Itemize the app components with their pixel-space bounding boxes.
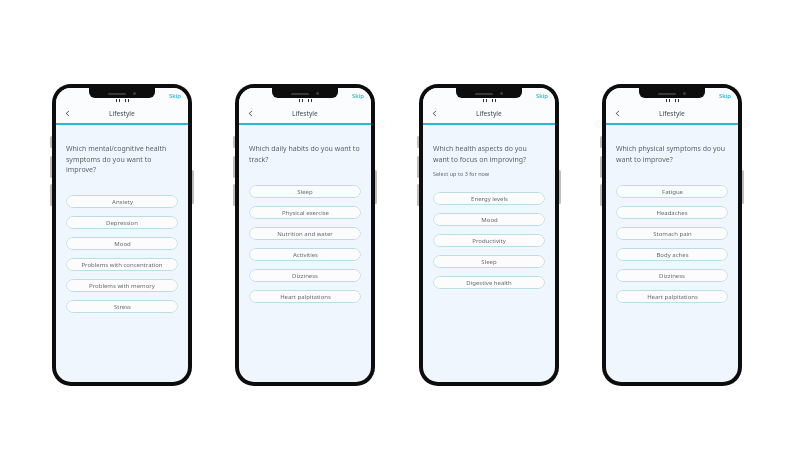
button[interactable]: Dizziness [249, 269, 361, 282]
button[interactable]: Headaches [616, 206, 728, 219]
button[interactable]: Heart palpitations [249, 290, 361, 303]
button[interactable]: Mood [433, 213, 545, 226]
button[interactable]: Skip [534, 91, 550, 101]
staticText: Headaches [656, 209, 688, 217]
staticText: Sleep [297, 188, 313, 196]
staticText: Productivity [472, 237, 506, 245]
button[interactable]: Productivity [433, 234, 545, 247]
staticText: Digestive health [466, 279, 512, 287]
button[interactable]: Stomach pain [616, 227, 728, 240]
button[interactable]: Back [611, 107, 623, 119]
staticText: Stress [114, 303, 131, 311]
button[interactable]: Problems with concentration [66, 258, 178, 271]
button[interactable]: Stress [66, 300, 178, 313]
button[interactable]: Sleep [249, 185, 361, 198]
button[interactable]: Back [61, 107, 73, 119]
staticText: Problems with memory [89, 282, 155, 290]
button[interactable]: Anxiety [66, 195, 178, 208]
staticText: Anxiety [112, 198, 133, 206]
button[interactable]: Body aches [616, 248, 728, 261]
button[interactable]: Fatigue [616, 185, 728, 198]
staticText: Skip [169, 92, 181, 100]
button[interactable]: Skip [167, 91, 183, 101]
staticText: Depression [106, 219, 138, 227]
button[interactable]: Sleep [433, 255, 545, 268]
staticText: Energy levels [471, 195, 508, 203]
staticText: Physical exercise [282, 209, 329, 217]
button[interactable]: Dizziness [616, 269, 728, 282]
button[interactable]: Energy levels [433, 192, 545, 205]
staticText: Problems with concentration [81, 261, 163, 269]
staticText: Which physical symptoms do you want to i… [616, 144, 728, 164]
staticText: Dizziness [292, 272, 318, 280]
staticText: Skip [352, 92, 364, 100]
staticText: Select up to 3 for now [433, 170, 490, 177]
staticText: Which daily habits do you want to track? [249, 144, 361, 164]
staticText: Stomach pain [653, 230, 692, 238]
staticText: Skip [536, 92, 548, 100]
button[interactable]: Back [244, 107, 256, 119]
staticText: Sleep [481, 258, 497, 266]
staticText: Dizziness [659, 272, 685, 280]
staticText: Nutrition and water [277, 230, 333, 238]
staticText: Skip [719, 92, 731, 100]
button[interactable]: Physical exercise [249, 206, 361, 219]
staticText: Lifestyle [109, 109, 135, 118]
staticText: Body aches [656, 251, 689, 259]
staticText: Fatigue [662, 188, 683, 196]
staticText: Lifestyle [292, 109, 318, 118]
button[interactable]: Nutrition and water [249, 227, 361, 240]
staticText: Lifestyle [476, 109, 502, 118]
button[interactable]: Mood [66, 237, 178, 250]
staticText: Which mental/cognitive health symptoms d… [66, 144, 178, 174]
staticText: Heart palpitations [647, 293, 698, 301]
button[interactable]: Back [428, 107, 440, 119]
button[interactable]: Depression [66, 216, 178, 229]
button[interactable]: Skip [717, 91, 733, 101]
staticText: Mood [481, 216, 498, 224]
button[interactable]: Skip [350, 91, 366, 101]
button[interactable]: Digestive health [433, 276, 545, 289]
staticText: Mood [114, 240, 131, 248]
button[interactable]: Activities [249, 248, 361, 261]
staticText: Heart palpitations [280, 293, 331, 301]
staticText: Lifestyle [659, 109, 685, 118]
staticText: Which health aspects do you want to focu… [433, 144, 545, 164]
button[interactable]: Heart palpitations [616, 290, 728, 303]
button[interactable]: Problems with memory [66, 279, 178, 292]
staticText: Activities [293, 251, 318, 259]
